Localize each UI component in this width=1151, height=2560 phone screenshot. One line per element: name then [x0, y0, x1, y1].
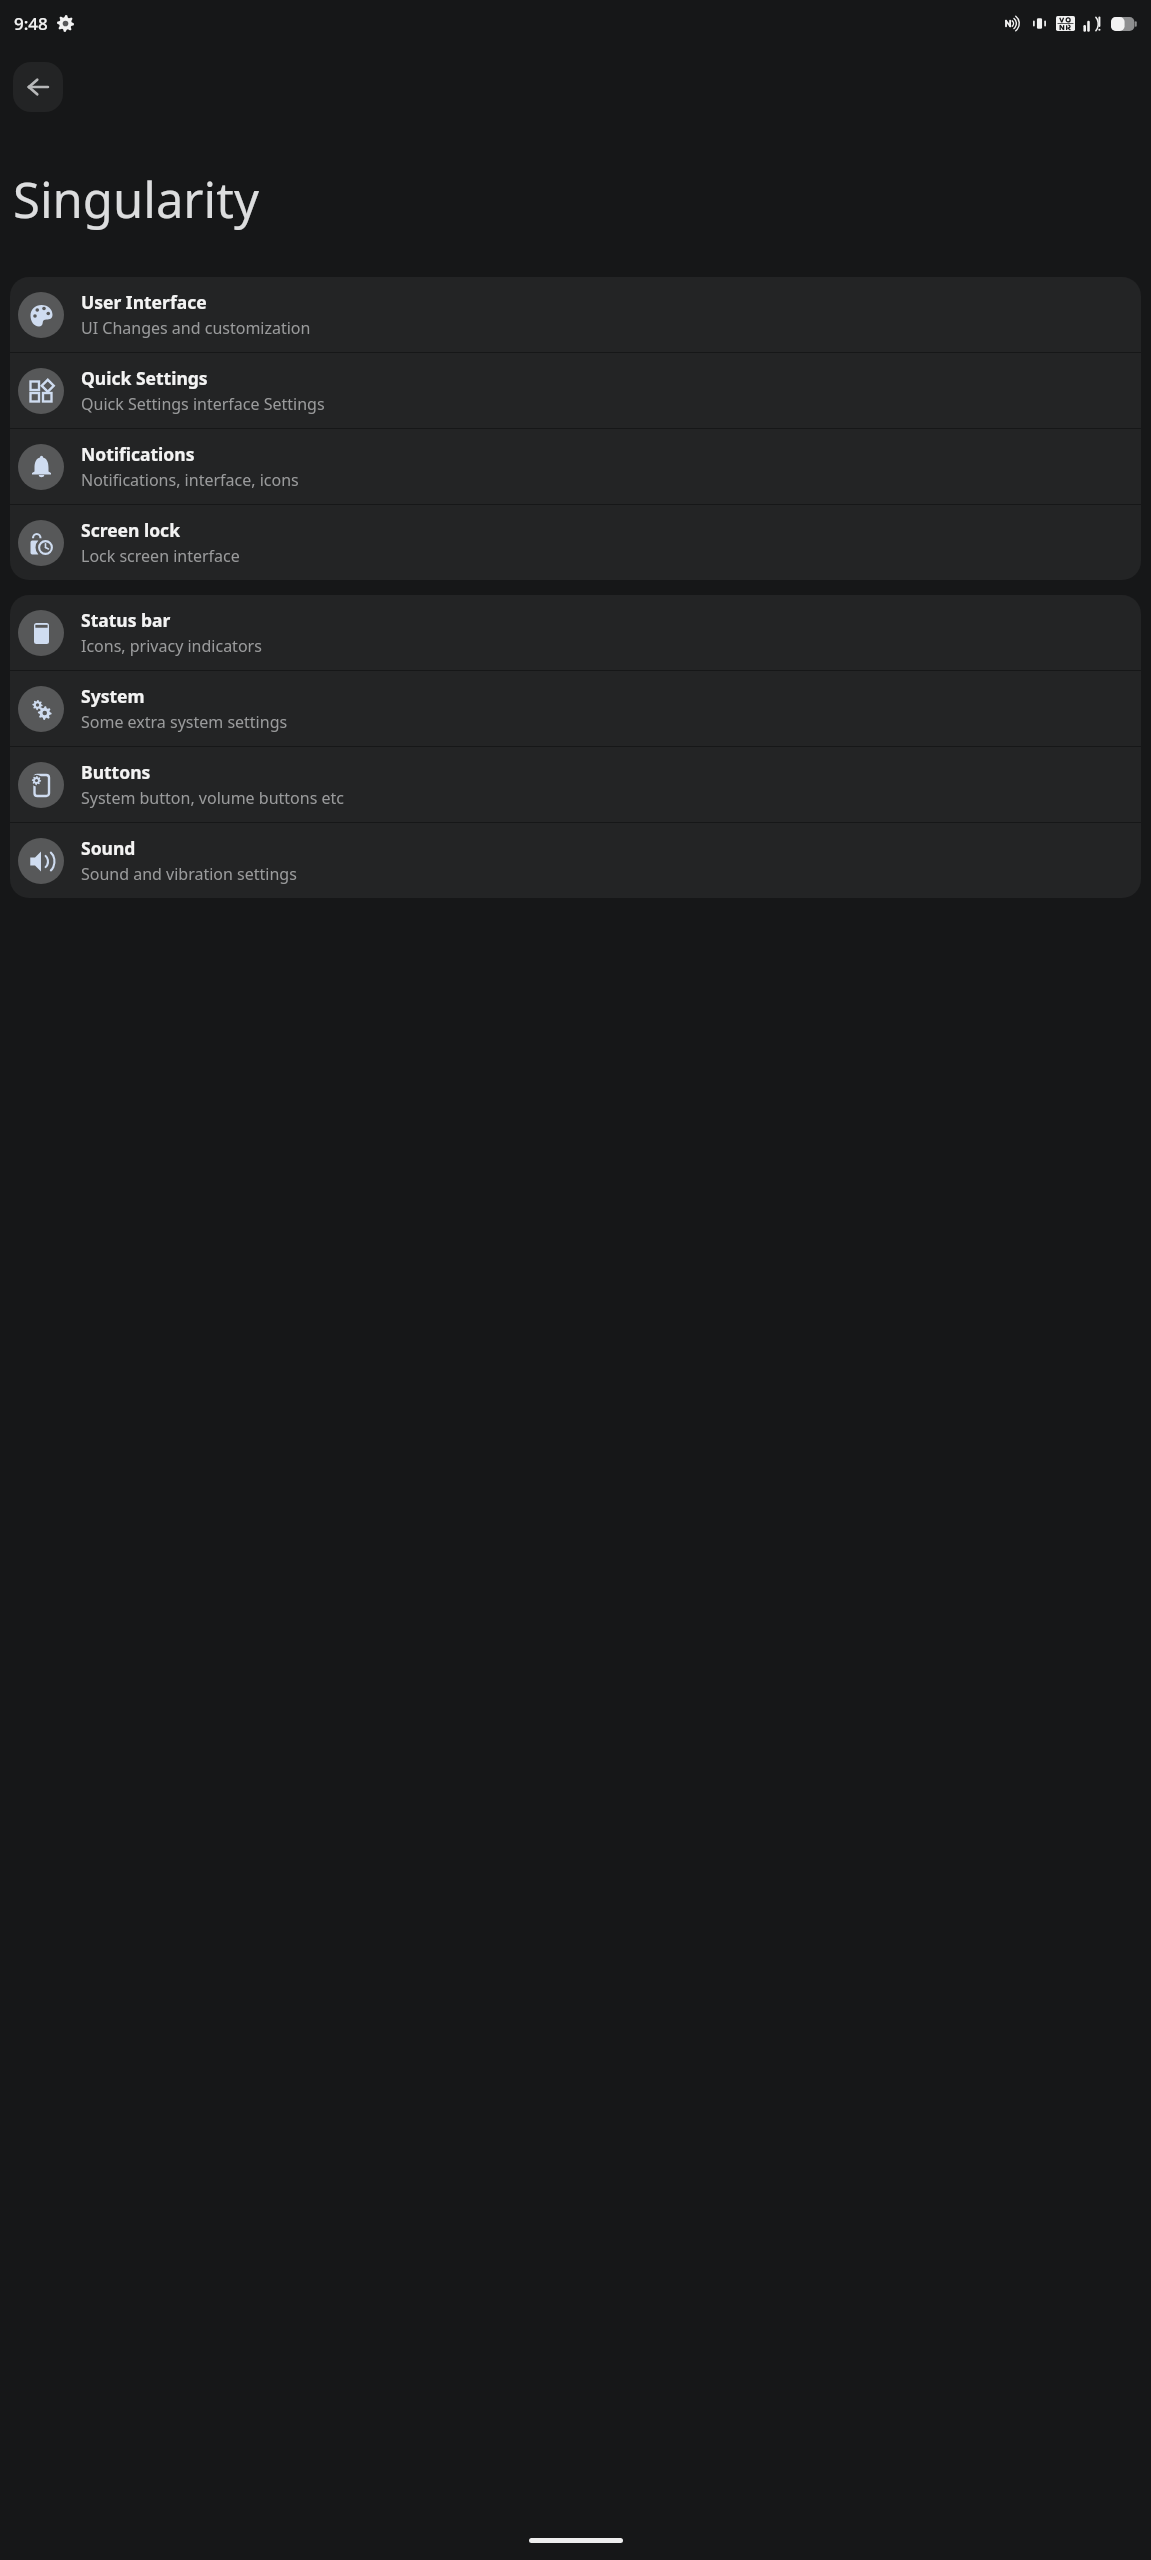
- staticText: Notifications: [81, 442, 195, 466]
- button[interactable]: System: [10, 671, 1141, 746]
- button[interactable]: Status bar: [10, 595, 1141, 670]
- staticText: Sound and vibration settings: [81, 863, 297, 885]
- button[interactable]: Buttons: [10, 747, 1141, 822]
- staticText: System: [81, 684, 145, 708]
- button[interactable]: Screen lock: [10, 505, 1141, 580]
- staticText: Sound: [81, 836, 136, 860]
- staticText: Some extra system settings: [81, 711, 288, 733]
- staticText: System button, volume buttons etc: [81, 787, 344, 809]
- staticText: Notifications, interface, icons: [81, 469, 299, 491]
- button[interactable]: Sound: [10, 823, 1141, 898]
- button[interactable]: Back: [13, 62, 63, 112]
- staticText: Icons, privacy indicators: [81, 635, 262, 657]
- staticText: Lock screen interface: [81, 545, 240, 567]
- staticText: Singularity: [13, 166, 259, 233]
- button[interactable]: Notifications: [10, 429, 1141, 504]
- staticText: User Interface: [81, 290, 207, 314]
- button[interactable]: User Interface: [10, 277, 1141, 352]
- staticText: UI Changes and customization: [81, 317, 311, 339]
- staticText: Status bar: [81, 608, 171, 632]
- staticText: 9:48: [14, 12, 48, 35]
- button[interactable]: Quick Settings: [10, 353, 1141, 428]
- staticText: Quick Settings interface Settings: [81, 393, 325, 415]
- staticText: Buttons: [81, 760, 151, 784]
- staticText: Quick Settings: [81, 366, 208, 390]
- staticText: Screen lock: [81, 518, 180, 542]
